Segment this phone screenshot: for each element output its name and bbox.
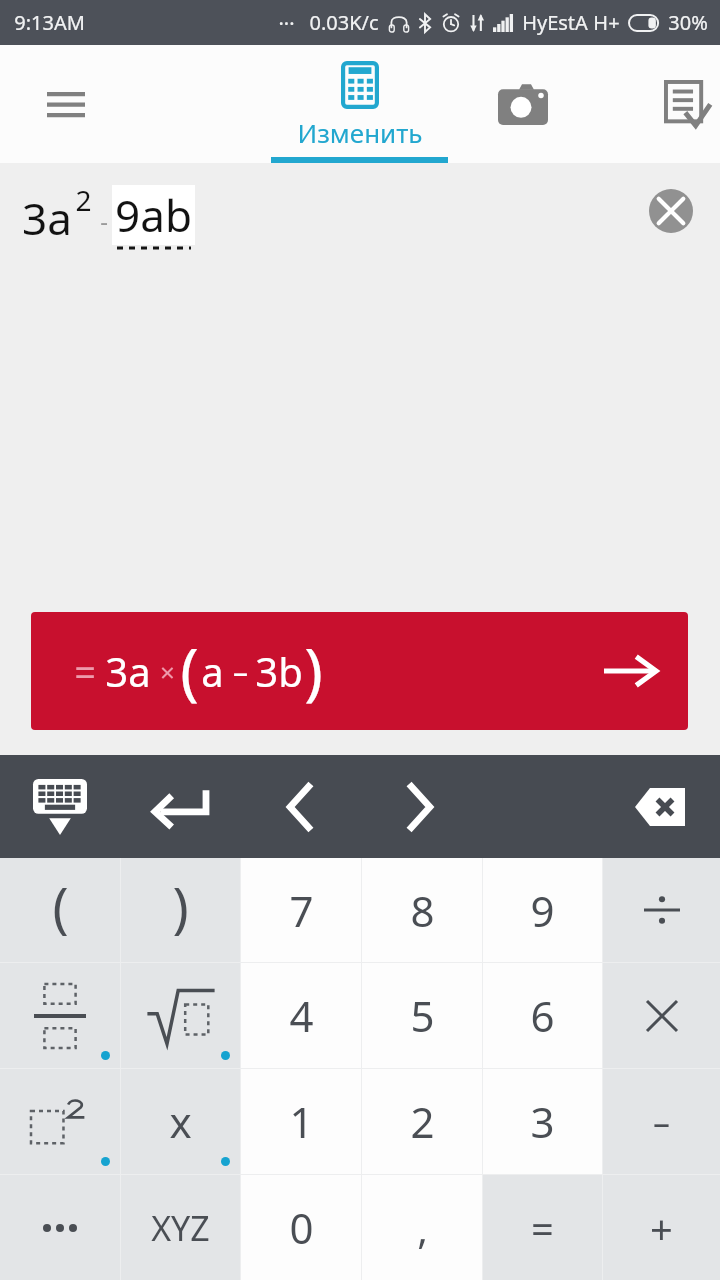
button[interactable]: div <box>603 858 720 962</box>
button[interactable]: Clear <box>640 180 702 242</box>
staticText: 2 <box>410 1093 435 1150</box>
staticText: 9:13AM <box>14 9 85 36</box>
button[interactable]: Camera <box>487 68 559 140</box>
staticText: 9 <box>530 882 555 939</box>
staticText: = <box>531 1201 554 1255</box>
button[interactable]: sqrt <box>121 963 240 1068</box>
staticText: 3 <box>530 1093 555 1150</box>
button[interactable]: 8 <box>362 858 482 962</box>
button[interactable]: Solutions <box>650 68 720 140</box>
button[interactable]: – <box>603 1069 720 1174</box>
staticText: 3a <box>22 188 72 248</box>
staticText: ) <box>172 869 189 943</box>
button[interactable]: Menu <box>26 74 106 134</box>
button[interactable]: = <box>31 612 688 730</box>
staticText: 5 <box>410 987 435 1044</box>
button[interactable]: ) <box>121 858 240 962</box>
button[interactable]: frac <box>0 963 120 1068</box>
button[interactable]: 3 <box>483 1069 602 1174</box>
staticText: 0 <box>289 1199 314 1256</box>
button[interactable]: Hide keyboard <box>20 767 100 847</box>
staticText: 9ab <box>115 185 192 245</box>
staticText: x <box>169 1093 192 1150</box>
button[interactable]: sq <box>0 1069 120 1174</box>
staticText: - <box>100 204 108 237</box>
button[interactable]: 4 <box>241 963 361 1068</box>
staticText: – <box>653 1099 670 1145</box>
button[interactable]: = <box>483 1175 602 1280</box>
staticText: ( <box>180 627 199 711</box>
staticText: 0.03K/c <box>309 9 379 36</box>
staticText: × <box>160 654 175 689</box>
button[interactable]: Изменить <box>271 45 448 163</box>
button[interactable]: ( <box>0 858 120 962</box>
button[interactable]: Move right <box>380 767 460 847</box>
button[interactable]: dots <box>0 1175 120 1280</box>
staticText: 2 <box>75 181 92 219</box>
button[interactable]: 0 <box>241 1175 361 1280</box>
staticText: ... <box>278 4 295 31</box>
button[interactable]: 6 <box>483 963 602 1068</box>
button[interactable]: Enter <box>140 767 220 847</box>
staticText: 6 <box>530 987 555 1044</box>
staticText: HyEstA <box>522 9 588 36</box>
button[interactable]: x <box>121 1069 240 1174</box>
staticText: ) <box>304 627 323 711</box>
staticText: XYZ <box>151 1205 210 1251</box>
staticText: 1 <box>289 1093 314 1150</box>
button[interactable]: , <box>362 1175 482 1280</box>
button[interactable]: 1 <box>241 1069 361 1174</box>
staticText: H+ <box>593 9 620 36</box>
staticText: = <box>74 645 96 697</box>
button[interactable]: XYZ <box>121 1175 240 1280</box>
staticText: , <box>417 1201 428 1255</box>
staticText: 30% <box>668 9 708 36</box>
staticText: 8 <box>410 882 435 939</box>
staticText: Изменить <box>297 115 423 150</box>
button[interactable]: 5 <box>362 963 482 1068</box>
button[interactable]: 9 <box>483 858 602 962</box>
staticText: – <box>233 651 248 692</box>
staticText: 3a <box>105 644 151 698</box>
button[interactable]: Backspace <box>620 767 700 847</box>
staticText: 7 <box>289 882 314 939</box>
button[interactable]: + <box>603 1175 720 1280</box>
button[interactable]: Move left <box>260 767 340 847</box>
button[interactable]: 7 <box>241 858 361 962</box>
button[interactable]: 2 <box>362 1069 482 1174</box>
staticText: 4 <box>289 987 314 1044</box>
staticText: + <box>650 1201 673 1255</box>
button[interactable]: mul <box>603 963 720 1068</box>
staticText: 3b <box>255 644 303 698</box>
staticText: a <box>201 644 224 698</box>
staticText: ( <box>52 869 69 943</box>
